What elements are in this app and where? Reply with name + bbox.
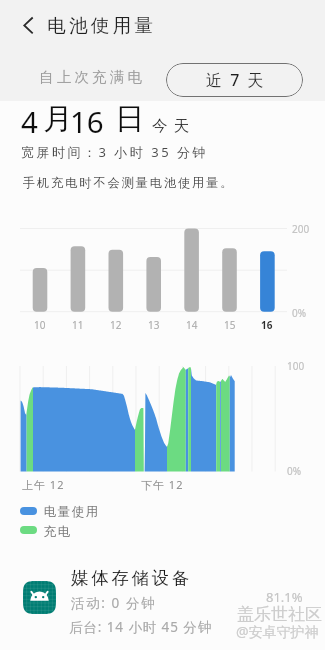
staticText: 日: [115, 101, 145, 138]
staticText: 盖乐世社区: [237, 604, 322, 625]
staticText: 14: [186, 318, 198, 332]
button[interactable]: 媒体存储设备: [0, 556, 325, 650]
staticText: 手机充电时不会测量电池使用量。: [23, 175, 235, 190]
staticText: 充电: [43, 524, 71, 540]
staticText: 近 7 天: [206, 69, 266, 91]
button[interactable]: 电量使用: [20, 501, 120, 521]
staticText: 100: [287, 359, 305, 373]
staticText: 下午 12: [141, 477, 184, 492]
staticText: 活动: 0 分钟: [71, 594, 157, 612]
button[interactable]: 近 7 天: [166, 63, 303, 97]
staticText: 电量使用: [43, 504, 99, 520]
staticText: 后台: 14 小时 45 分钟: [69, 618, 213, 636]
button[interactable]: 充电: [20, 521, 120, 541]
staticText: 宽屏时间：3 小时 35 分钟: [21, 143, 208, 161]
staticText: 自上次充满电: [39, 68, 146, 86]
staticText: 13: [148, 318, 160, 332]
staticText: 11: [72, 318, 84, 332]
staticText: 媒体存储设备: [71, 567, 193, 589]
staticText: 4: [21, 101, 38, 141]
staticText: 81.1%: [266, 588, 303, 606]
staticText: 今天: [152, 116, 196, 136]
staticText: 200: [292, 222, 310, 236]
staticText: 15: [224, 318, 236, 332]
staticText: @安卓守护神: [236, 622, 319, 641]
button[interactable]: 自上次充满电: [30, 62, 137, 92]
staticText: 上午 12: [22, 477, 65, 492]
staticText: 10: [34, 318, 46, 332]
staticText: 16: [261, 318, 273, 332]
staticText: 电池使用量: [47, 14, 157, 37]
staticText: 16: [70, 101, 104, 141]
staticText: 月: [43, 101, 73, 138]
staticText: 0%: [292, 306, 307, 320]
staticText: 0%: [287, 464, 302, 478]
staticText: 12: [110, 318, 122, 332]
button[interactable]: Back: [4, 2, 52, 50]
